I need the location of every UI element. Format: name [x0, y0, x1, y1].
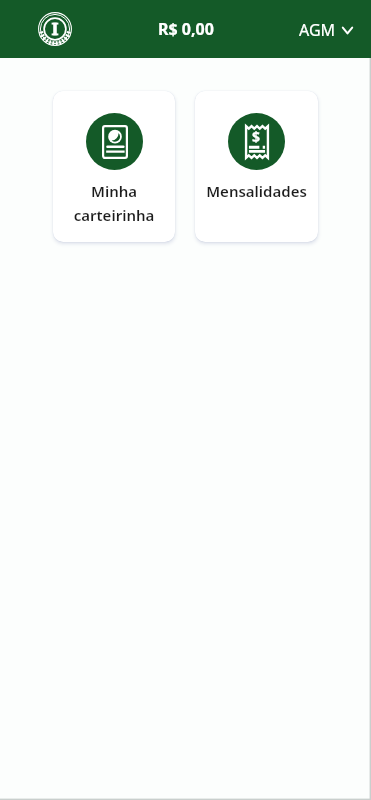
staticText: Mensalidades — [195, 181, 318, 201]
button[interactable]: Minha carteirinha — [53, 91, 175, 242]
staticText: R$ 0,00 — [158, 18, 214, 40]
staticText: AGM — [299, 19, 336, 41]
staticText: Minha carteirinha — [53, 181, 175, 225]
button[interactable]: $ — [195, 91, 318, 242]
button[interactable]: Independente logo — [38, 12, 72, 46]
staticText: $ — [252, 127, 261, 146]
button[interactable]: AGM — [295, 13, 357, 47]
